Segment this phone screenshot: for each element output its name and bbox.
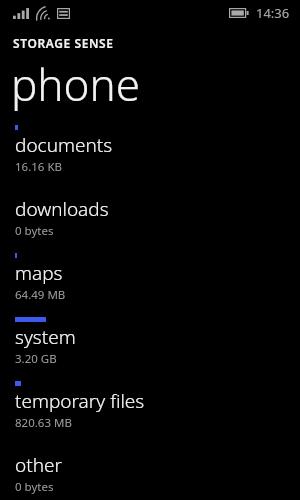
button[interactable]: maps (0, 251, 300, 303)
button[interactable]: temporary files (0, 379, 300, 431)
staticText: 16.16 KB (15, 159, 62, 175)
staticText: other (15, 452, 62, 478)
staticText: documents (15, 132, 113, 158)
staticText: temporary files (15, 388, 145, 414)
staticText: maps (15, 260, 63, 286)
staticText: system (15, 324, 76, 350)
button[interactable]: system (0, 315, 300, 367)
staticText: phone (11, 54, 140, 114)
button[interactable]: other (0, 443, 300, 495)
staticText: 820.63 MB (15, 415, 72, 431)
staticText: downloads (15, 196, 109, 222)
button[interactable]: documents (0, 123, 300, 175)
staticText: 3.20 GB (15, 351, 57, 367)
staticText: 14:36 (256, 4, 290, 22)
button[interactable]: downloads (0, 187, 300, 239)
staticText: 64.49 MB (15, 287, 66, 303)
staticText: 0 bytes (15, 479, 54, 495)
staticText: STORAGE SENSE (13, 35, 114, 51)
staticText: 0 bytes (15, 223, 54, 239)
